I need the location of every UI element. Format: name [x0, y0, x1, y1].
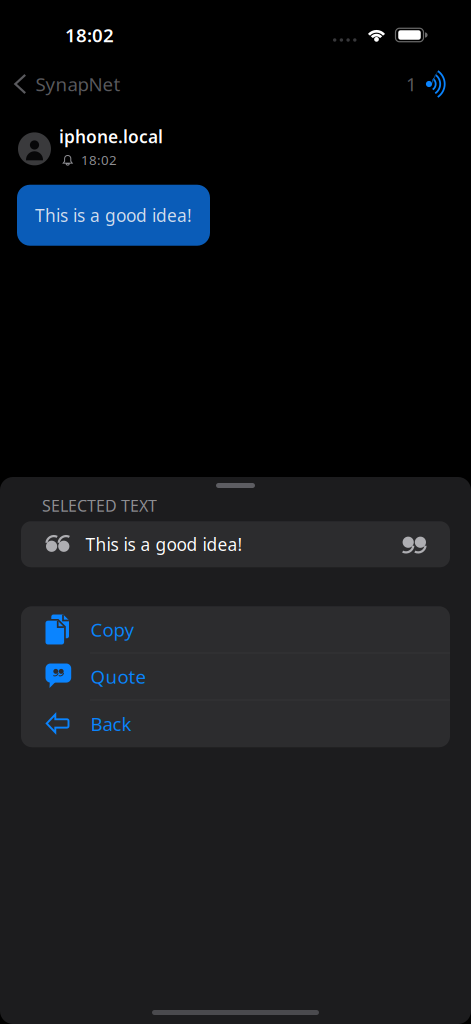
staticText: Quote	[90, 664, 146, 689]
button[interactable]: Back	[21, 700, 450, 747]
staticText: SELECTED TEXT	[42, 495, 157, 516]
staticText: 18:02	[81, 151, 117, 169]
staticText: This is a good idea!	[85, 533, 242, 556]
button[interactable]: SynapNet	[0, 62, 203, 106]
button[interactable]: Connected peers	[406, 62, 471, 106]
staticText: 18:02	[65, 23, 114, 47]
button[interactable]: Quote	[21, 653, 450, 700]
staticText: Copy	[90, 617, 134, 642]
button[interactable]: Copy	[21, 606, 450, 653]
staticText: This is a good idea!	[35, 204, 192, 227]
staticText: Back	[90, 711, 131, 736]
staticText: iphone.local	[59, 125, 163, 148]
staticText: 1	[406, 72, 417, 96]
staticText: SynapNet	[35, 72, 120, 96]
